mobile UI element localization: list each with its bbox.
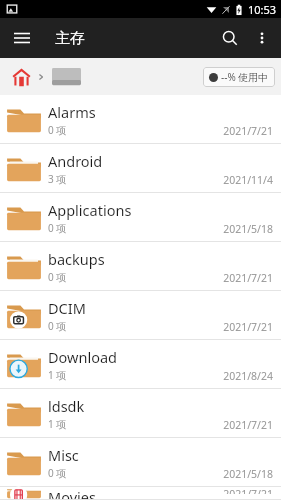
staticText: DCIM bbox=[48, 298, 86, 318]
staticText: backups bbox=[48, 249, 105, 269]
staticText: Applications bbox=[48, 200, 132, 220]
staticText: 1 项 bbox=[48, 368, 67, 382]
staticText: 2021/7/21 bbox=[223, 124, 273, 138]
staticText: 2021/7/21 bbox=[223, 487, 273, 494]
staticText: 2021/7/21 bbox=[223, 271, 273, 285]
button[interactable]: Movies bbox=[0, 487, 281, 500]
staticText: 3 项 bbox=[48, 172, 67, 186]
button[interactable]: Internal storage bbox=[49, 64, 83, 90]
button[interactable]: Android bbox=[0, 144, 281, 193]
staticText: 2021/8/24 bbox=[223, 369, 273, 383]
button[interactable]: Home bbox=[8, 64, 34, 90]
staticText: 0 项 bbox=[48, 123, 67, 137]
staticText: 1 项 bbox=[48, 417, 67, 431]
staticText: 0 项 bbox=[48, 466, 67, 480]
staticText: 2021/7/21 bbox=[223, 320, 273, 334]
staticText: ldsdk bbox=[48, 396, 85, 416]
button[interactable]: More options bbox=[247, 23, 277, 53]
button[interactable]: Applications bbox=[0, 193, 281, 242]
button[interactable]: --% 使用中 bbox=[203, 67, 275, 87]
button[interactable]: Alarms bbox=[0, 95, 281, 144]
button[interactable]: DCIM bbox=[0, 291, 281, 340]
staticText: 0 项 bbox=[48, 319, 67, 333]
button[interactable]: Open navigation drawer bbox=[8, 24, 36, 52]
staticText: 2021/5/18 bbox=[223, 467, 273, 481]
staticText: 10:53 bbox=[248, 2, 277, 17]
staticText: --% 使用中 bbox=[221, 70, 269, 84]
staticText: 主存 bbox=[55, 29, 85, 48]
staticText: 2021/7/21 bbox=[223, 418, 273, 432]
staticText: Alarms bbox=[48, 102, 96, 122]
button[interactable]: Search bbox=[213, 21, 247, 55]
staticText: Download bbox=[48, 347, 117, 367]
staticText: Movies bbox=[48, 487, 96, 499]
button[interactable]: Misc bbox=[0, 438, 281, 487]
button[interactable]: Download bbox=[0, 340, 281, 389]
staticText: 0 项 bbox=[48, 270, 67, 284]
staticText: Android bbox=[48, 151, 103, 171]
button[interactable]: backups bbox=[0, 242, 281, 291]
staticText: 2021/11/4 bbox=[223, 173, 273, 187]
button[interactable]: ldsdk bbox=[0, 389, 281, 438]
staticText: 2021/5/18 bbox=[223, 222, 273, 236]
staticText: 0 项 bbox=[48, 221, 67, 235]
staticText: Misc bbox=[48, 445, 79, 465]
